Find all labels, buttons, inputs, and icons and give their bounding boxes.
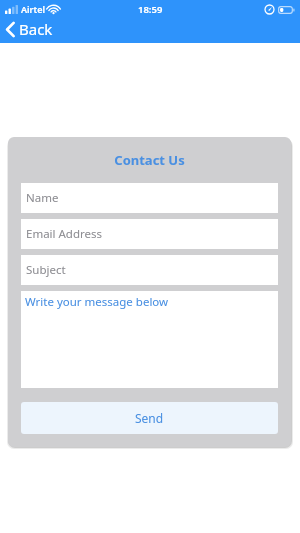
staticText: Email Address [26, 226, 103, 242]
other: Wi-Fi [48, 5, 59, 14]
staticText: Airtel [21, 3, 45, 15]
staticText: Back [19, 19, 53, 39]
button[interactable]: Send [21, 402, 278, 434]
staticText: Contact Us [8, 151, 291, 169]
staticText: Write your message below [25, 294, 169, 310]
staticText: 18:59 [138, 3, 163, 16]
button[interactable]: Back [0, 17, 63, 41]
button[interactable]: Name [21, 183, 278, 213]
button[interactable]: Email Address [21, 219, 278, 249]
other: Location [265, 5, 274, 14]
staticText: Subject [26, 262, 66, 278]
button[interactable]: Write your message below [21, 291, 278, 388]
staticText: Send [135, 410, 164, 426]
staticText: Name [26, 190, 59, 206]
other: Cellular signal [5, 5, 18, 14]
button[interactable]: Subject [21, 255, 278, 285]
other: Battery [278, 6, 295, 14]
